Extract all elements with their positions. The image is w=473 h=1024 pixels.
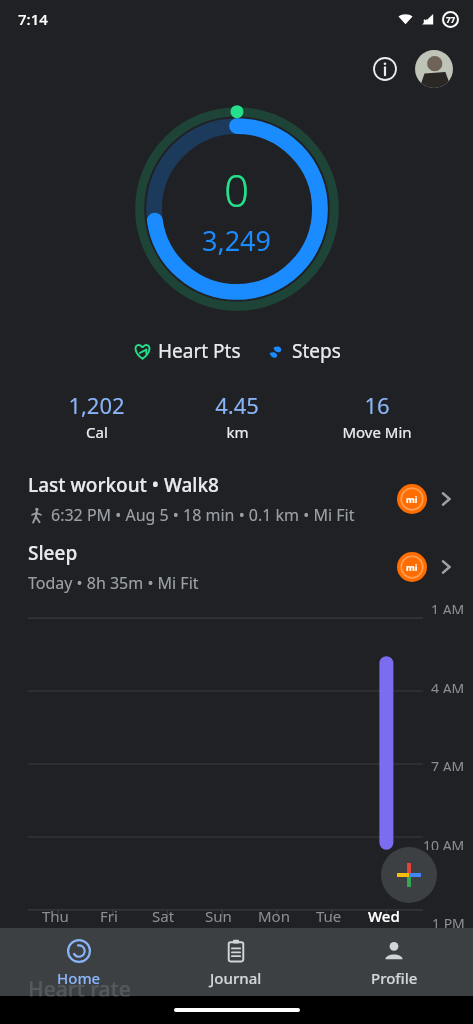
staticText: Fri — [100, 906, 118, 926]
staticText: Sun — [205, 906, 232, 926]
button[interactable]: Last workout • Walk8 — [0, 472, 473, 526]
staticText: Mon — [258, 906, 290, 926]
staticText: Home — [57, 968, 101, 988]
staticText: Steps — [292, 338, 341, 364]
staticText: Move Min — [342, 422, 412, 442]
button[interactable]: Sleep — [0, 540, 473, 594]
button[interactable]: Info — [365, 49, 405, 89]
staticText: Sleep — [28, 540, 78, 566]
staticText: 7 AM — [431, 757, 465, 771]
button[interactable]: 1,202 — [26, 390, 167, 442]
staticText: 77 — [446, 14, 456, 25]
staticText: mi — [406, 493, 418, 505]
staticText: 4 AM — [431, 679, 465, 693]
button[interactable]: Home — [0, 928, 157, 996]
staticText: km — [226, 422, 249, 442]
staticText: 4.45 — [215, 390, 259, 420]
staticText: mi — [406, 561, 418, 573]
staticText: Sat — [152, 906, 175, 926]
staticText: 3,249 — [202, 222, 272, 259]
staticText: Heart rate — [28, 975, 131, 1004]
button[interactable]: Heart Pts — [133, 338, 241, 364]
staticText: Wed — [368, 906, 400, 926]
staticText: Tue — [316, 906, 342, 926]
staticText: 16 — [364, 390, 390, 420]
button[interactable]: 4.45 — [167, 390, 307, 442]
button[interactable]: Add activity — [381, 847, 437, 903]
staticText: Today • 8h 35m • Mi Fit — [28, 572, 199, 594]
staticText: Heart Pts — [158, 338, 241, 364]
button[interactable]: Journal — [157, 928, 315, 996]
staticText: 0 — [224, 160, 250, 220]
staticText: 7:14 — [18, 9, 48, 29]
staticText: 1 AM — [431, 600, 465, 614]
staticText: Profile — [371, 968, 418, 988]
staticText: Last workout • Walk8 — [28, 472, 219, 498]
button[interactable]: Steps — [267, 338, 341, 364]
button[interactable]: 16 — [307, 390, 447, 442]
button[interactable]: Profile photo — [415, 50, 453, 88]
staticText: 1 PM — [432, 914, 465, 928]
staticText: 10 AM — [423, 836, 465, 850]
staticText: 1,202 — [68, 390, 125, 420]
staticText: Journal — [210, 968, 262, 988]
staticText: Cal — [86, 422, 108, 442]
staticText: 6:32 PM • Aug 5 • 18 min • 0.1 km • Mi F… — [51, 504, 355, 526]
button[interactable]: Profile — [315, 928, 473, 996]
staticText: Thu — [42, 906, 69, 926]
